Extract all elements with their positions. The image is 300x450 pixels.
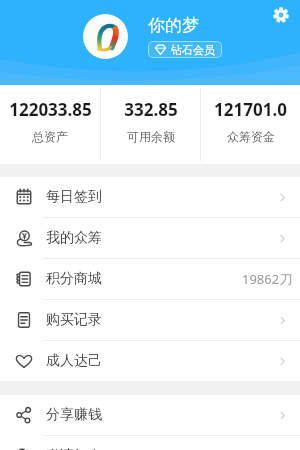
button[interactable]: Settings xyxy=(271,5,291,25)
button[interactable]: 122033.85 xyxy=(0,85,100,164)
staticText: 19862刀 xyxy=(242,270,293,288)
staticText: 122033.85 xyxy=(9,98,92,121)
staticText: 积分商城 xyxy=(46,270,102,288)
button[interactable]: 积分商城 xyxy=(0,259,300,299)
staticText: 邀请好友 xyxy=(46,447,102,450)
button[interactable]: 钻石会员 xyxy=(148,41,222,58)
staticText: 332.85 xyxy=(124,98,178,121)
staticText: 你的梦 xyxy=(148,15,199,36)
staticText: 购买记录 xyxy=(46,311,102,329)
staticText: 成人达己 xyxy=(46,352,102,370)
staticText: 每日签到 xyxy=(46,188,102,206)
staticText: 钻石会员 xyxy=(171,43,215,57)
button[interactable]: 我的众筹 xyxy=(0,218,300,258)
button[interactable]: 每日签到 xyxy=(0,177,300,217)
button[interactable]: 121701.0 xyxy=(201,85,300,164)
staticText: 我的众筹 xyxy=(46,229,102,247)
button[interactable]: Avatar xyxy=(83,14,128,59)
button[interactable]: 购买记录 xyxy=(0,300,300,340)
button[interactable]: 332.85 xyxy=(101,85,200,164)
staticText: 众筹资金 xyxy=(227,129,275,144)
staticText: 总资产 xyxy=(32,129,68,144)
staticText: 121701.0 xyxy=(214,98,287,121)
button[interactable]: 成人达己 xyxy=(0,341,300,381)
staticText: 可用余额 xyxy=(127,129,175,144)
staticText: 分享赚钱 xyxy=(46,406,102,424)
button[interactable]: 分享赚钱 xyxy=(0,395,300,435)
button[interactable]: 邀请好友 xyxy=(0,436,300,450)
